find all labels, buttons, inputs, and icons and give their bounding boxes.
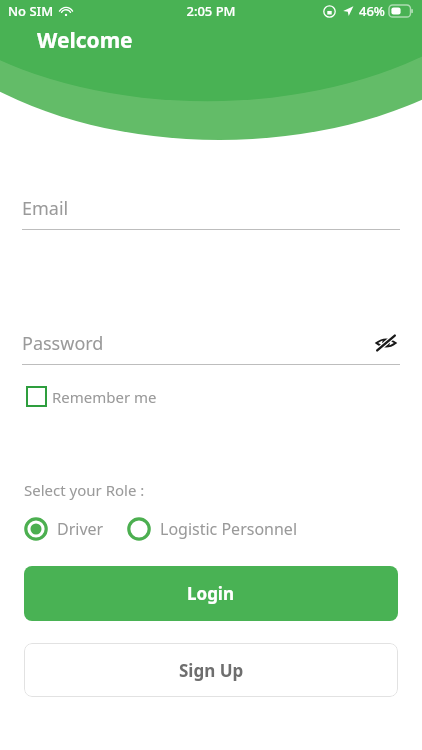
button[interactable]: Password xyxy=(22,328,400,358)
button[interactable]: Login xyxy=(24,566,398,621)
button[interactable]: Remember me xyxy=(26,382,157,411)
button[interactable]: Email xyxy=(22,193,400,223)
staticText: 2:05 PM xyxy=(186,2,236,20)
staticText: 46% xyxy=(359,2,385,20)
staticText: Sign Up xyxy=(179,659,244,682)
staticText: Welcome xyxy=(37,26,133,55)
staticText: Logistic Personnel xyxy=(160,518,298,540)
staticText: Driver xyxy=(57,518,104,540)
button[interactable]: Driver xyxy=(24,514,104,544)
staticText: Remember me xyxy=(52,387,157,407)
button[interactable]: Logistic Personnel xyxy=(127,514,298,544)
staticText: Select your Role : xyxy=(24,480,145,500)
staticText: Password xyxy=(22,331,104,356)
button[interactable]: Sign Up xyxy=(24,643,398,697)
button[interactable]: Show password xyxy=(372,329,400,357)
staticText: No SIM xyxy=(8,2,54,20)
staticText: Login xyxy=(187,582,235,605)
staticText: Email xyxy=(22,196,69,221)
